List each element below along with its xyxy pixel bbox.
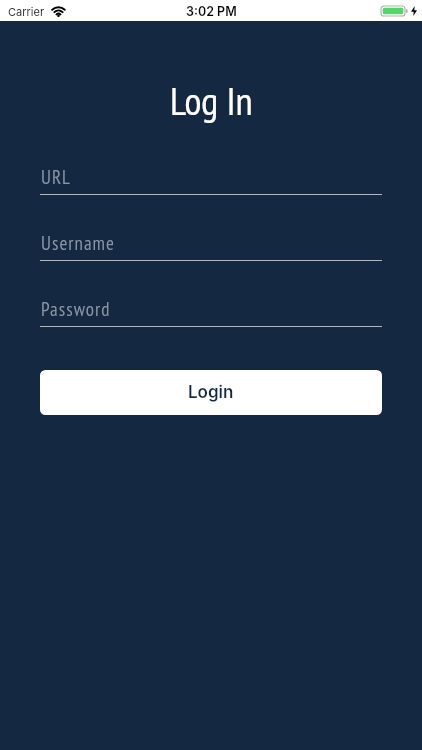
- staticText: Password: [41, 297, 111, 322]
- button[interactable]: URL: [41, 165, 381, 195]
- staticText: URL: [41, 165, 72, 190]
- button[interactable]: Login: [40, 370, 382, 415]
- button[interactable]: Password: [41, 297, 381, 327]
- staticText: Username: [41, 231, 115, 256]
- button[interactable]: Username: [41, 231, 381, 261]
- staticText: Log In: [170, 75, 253, 125]
- staticText: Login: [188, 382, 234, 403]
- staticText: 3:02 PM: [186, 4, 237, 19]
- staticText: Carrier: [8, 5, 45, 18]
